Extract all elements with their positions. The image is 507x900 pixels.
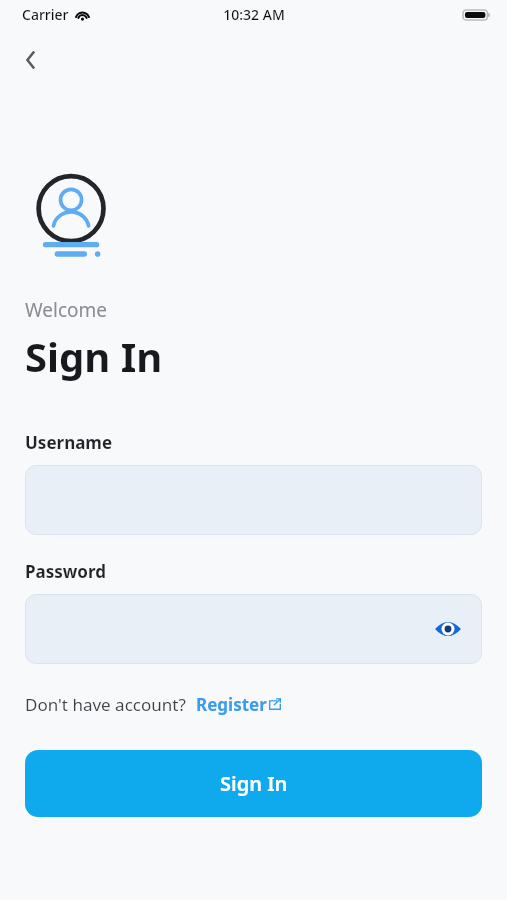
staticText: Don't have account? — [25, 693, 186, 716]
staticText: Welcome — [25, 297, 108, 323]
staticText: Password — [25, 560, 106, 583]
staticText: Carrier — [22, 5, 69, 24]
button[interactable]: Sign In — [25, 750, 482, 817]
staticText: Sign In — [25, 329, 163, 383]
staticText: 10:32 AM — [223, 5, 285, 24]
button[interactable] — [25, 465, 482, 535]
staticText: Username — [25, 431, 113, 454]
staticText: Register — [196, 693, 267, 716]
button[interactable]: Back — [10, 39, 52, 81]
staticText: Sign In — [220, 770, 288, 797]
button[interactable]: Register — [195, 691, 282, 718]
button[interactable]: Show password — [25, 594, 482, 664]
button[interactable]: Show password — [426, 607, 470, 651]
